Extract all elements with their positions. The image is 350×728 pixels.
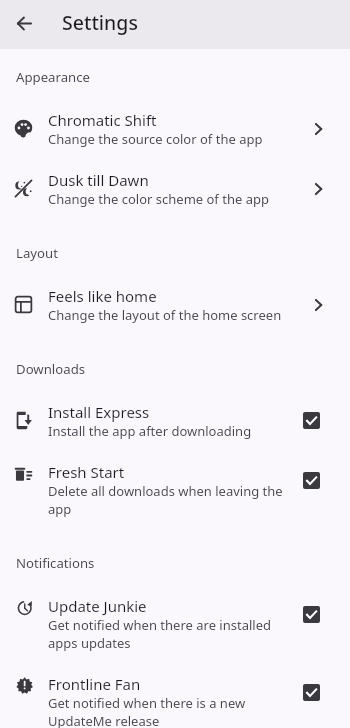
button[interactable]: Update Junkie: [0, 585, 350, 663]
staticText: Appearance: [16, 69, 90, 85]
button[interactable]: Chromatic Shift: [0, 99, 350, 159]
staticText: Install Express: [48, 402, 150, 422]
button[interactable]: Feels like home: [0, 275, 350, 335]
staticText: Update Junkie: [48, 596, 147, 616]
staticText: Notifications: [16, 555, 95, 571]
staticText: Install the app after downloading: [48, 422, 252, 440]
staticText: Change the source color of the app: [48, 130, 263, 148]
staticText: Feels like home: [48, 286, 157, 306]
button[interactable]: Frontline Fan: [0, 663, 350, 728]
staticText: Chromatic Shift: [48, 110, 157, 130]
staticText: Get notified when there are installed ap…: [48, 616, 288, 652]
staticText: Fresh Start: [48, 462, 125, 482]
staticText: Dusk till Dawn: [48, 170, 149, 190]
staticText: Settings: [62, 9, 138, 36]
button[interactable]: Fresh Start: [0, 451, 350, 529]
button[interactable]: Dusk till Dawn: [0, 159, 350, 219]
staticText: Layout: [16, 245, 58, 261]
button[interactable]: Install Express: [0, 391, 350, 451]
staticText: Delete all downloads when leaving the ap…: [48, 482, 288, 518]
staticText: Change the layout of the home screen: [48, 306, 282, 324]
staticText: Frontline Fan: [48, 674, 141, 694]
button[interactable]: Back: [8, 9, 40, 41]
staticText: Change the color scheme of the app: [48, 190, 269, 208]
staticText: Downloads: [16, 361, 86, 377]
staticText: Get notified when there is a new UpdateM…: [48, 694, 288, 728]
